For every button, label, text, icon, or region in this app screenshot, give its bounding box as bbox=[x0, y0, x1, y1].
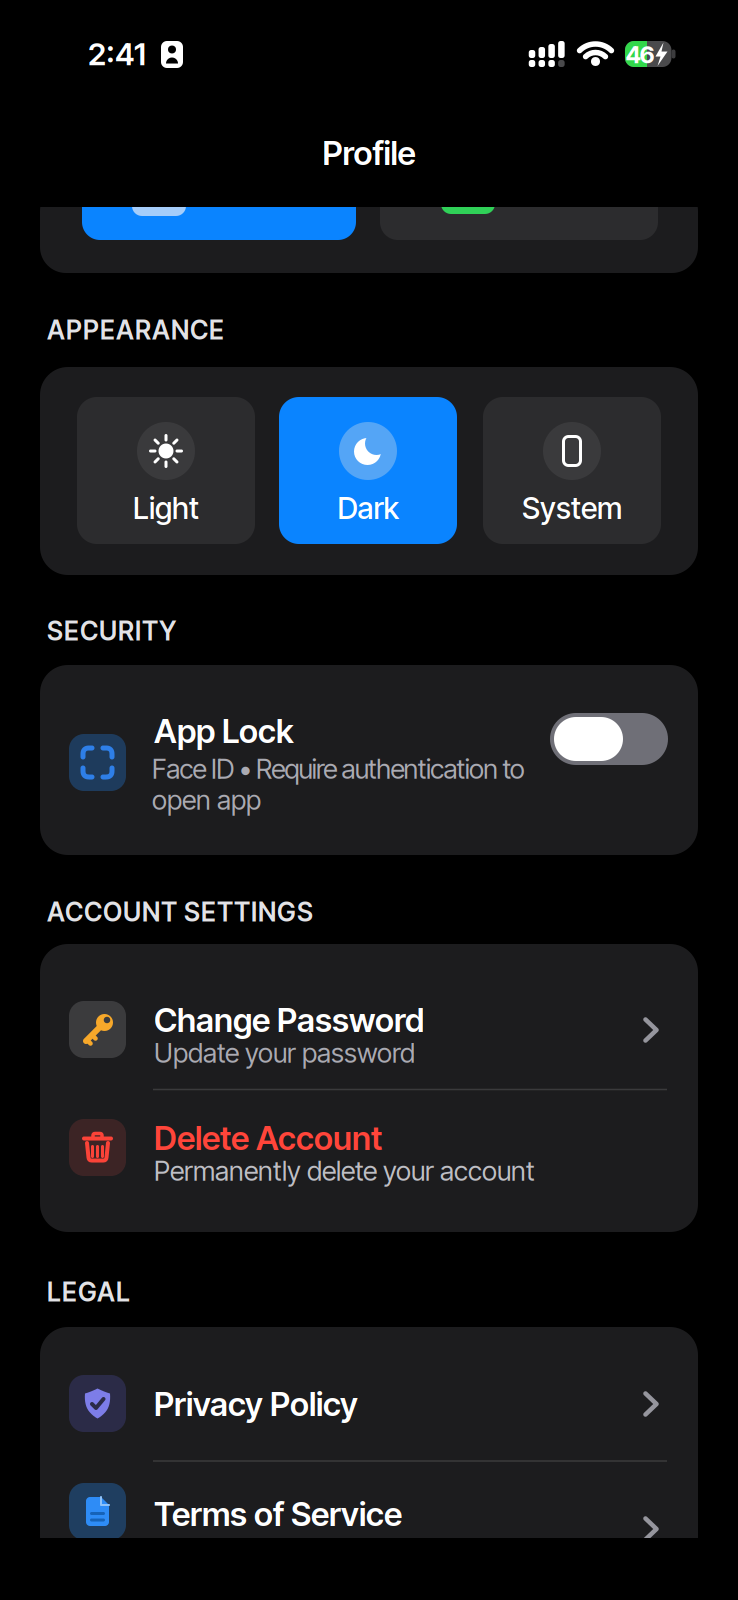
staticText: 2:41 bbox=[88, 35, 146, 73]
button[interactable]: App Lock bbox=[40, 665, 698, 855]
staticText: Dark bbox=[337, 490, 398, 526]
staticText: LEGAL bbox=[47, 1276, 130, 1308]
button[interactable]: Terms of Service bbox=[40, 1461, 698, 1561]
staticText: Change Password bbox=[154, 1000, 424, 1040]
button[interactable]: Light bbox=[77, 397, 255, 544]
button[interactable]: Privacy Policy bbox=[40, 1327, 698, 1461]
staticText: Delete Account bbox=[154, 1118, 382, 1158]
button[interactable]: Delete Account bbox=[40, 1090, 698, 1232]
staticText: System bbox=[522, 490, 622, 526]
staticText: Terms of Service bbox=[154, 1494, 402, 1534]
staticText: open app bbox=[152, 784, 261, 816]
staticText: APPEARANCE bbox=[47, 314, 224, 346]
button[interactable] bbox=[380, 188, 658, 240]
staticText: ACCOUNT SETTINGS bbox=[47, 896, 313, 928]
staticText: SECURITY bbox=[47, 615, 176, 647]
staticText: Permanently delete your account bbox=[154, 1155, 535, 1187]
button[interactable] bbox=[82, 188, 356, 240]
button[interactable]: System bbox=[483, 397, 661, 544]
staticText: App Lock bbox=[154, 711, 294, 751]
button[interactable]: Dark bbox=[279, 397, 457, 544]
staticText: Light bbox=[133, 490, 199, 526]
button[interactable]: Change Password bbox=[40, 944, 698, 1089]
staticText: 46 bbox=[625, 40, 654, 69]
staticText: Profile bbox=[322, 133, 415, 173]
staticText: Privacy Policy bbox=[154, 1384, 358, 1424]
staticText: Face ID • Require authentication to bbox=[152, 753, 525, 785]
staticText: Update your password bbox=[154, 1037, 415, 1069]
